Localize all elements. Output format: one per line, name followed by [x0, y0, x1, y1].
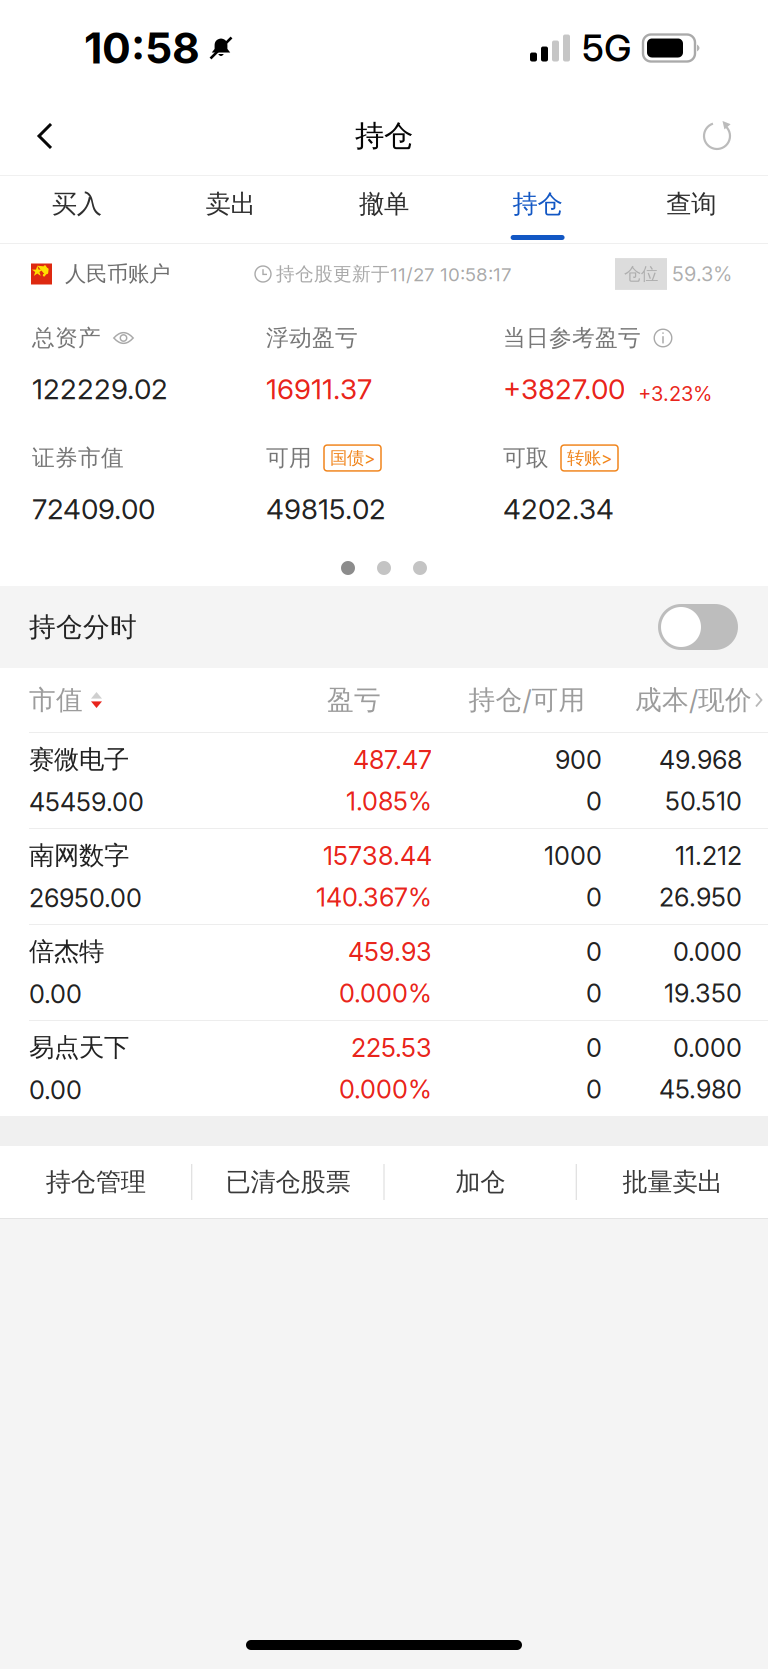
button[interactable]: 买入: [0, 176, 154, 244]
staticText: 72409.00: [32, 492, 155, 526]
button[interactable]: 易点天下: [0, 1020, 768, 1116]
button[interactable]: 加仓: [384, 1146, 576, 1218]
staticText: 已清仓股票: [225, 1166, 350, 1198]
staticText: 0.000: [673, 1032, 742, 1063]
staticText: 持仓/可用: [468, 683, 585, 717]
staticText: 45.980: [659, 1074, 742, 1105]
staticText: 59.3%: [672, 262, 732, 286]
staticText: 持仓: [355, 117, 413, 154]
staticText: 10:58: [84, 22, 200, 74]
staticText: 浮动盈亏: [266, 324, 358, 352]
staticText: +3.23%: [638, 382, 712, 406]
staticText: 持仓分时: [29, 610, 137, 644]
staticText: 赛微电子: [29, 744, 129, 776]
button[interactable]: 倍杰特: [0, 924, 768, 1020]
staticText: 0: [586, 936, 602, 967]
staticText: 0: [586, 1074, 602, 1105]
staticText: 当日参考盈亏: [503, 324, 641, 352]
staticText: 国债>: [330, 447, 375, 469]
staticText: 19.350: [664, 978, 742, 1009]
staticText: 倍杰特: [29, 936, 104, 968]
staticText: 0: [586, 1032, 602, 1063]
staticText: 49815.02: [266, 492, 386, 526]
staticText: 0.00: [29, 979, 82, 1009]
button[interactable]: 返回: [0, 96, 104, 176]
staticText: 49.968: [659, 744, 742, 775]
staticText: 持仓管理: [46, 1166, 146, 1198]
staticText: 加仓: [455, 1166, 505, 1198]
staticText: 可取: [503, 444, 549, 472]
staticText: 1.085%: [346, 786, 432, 817]
staticText: 225.53: [351, 1032, 432, 1063]
button[interactable]: 刷新: [664, 96, 768, 176]
staticText: 人民币账户: [65, 261, 170, 287]
staticText: 5G: [582, 25, 631, 71]
staticText: 15738.44: [323, 840, 432, 871]
staticText: 查询: [666, 188, 716, 220]
staticText: 卖出: [205, 188, 255, 220]
staticText: 122229.02: [32, 372, 168, 406]
staticText: 盈亏: [327, 683, 381, 717]
staticText: 持仓: [513, 188, 563, 220]
staticText: 900: [555, 744, 602, 775]
staticText: 0: [586, 882, 602, 913]
button[interactable]: 查询: [614, 176, 768, 244]
staticText: 仓位: [624, 263, 658, 285]
staticText: 0.000%: [339, 978, 432, 1009]
staticText: 证券市值: [32, 444, 124, 472]
staticText: 26.950: [659, 882, 742, 913]
staticText: 140.367%: [316, 882, 432, 913]
staticText: 0: [586, 978, 602, 1009]
button[interactable]: 持仓管理: [0, 1146, 191, 1218]
staticText: 买入: [52, 188, 102, 220]
staticText: 45459.00: [29, 787, 144, 817]
staticText: 1000: [544, 840, 602, 871]
staticText: +3827.00: [503, 372, 625, 406]
staticText: 4202.34: [503, 492, 614, 526]
staticText: 11.212: [675, 840, 742, 871]
staticText: 50.510: [665, 786, 742, 817]
staticText: 市值: [29, 683, 83, 717]
button[interactable]: 持仓: [461, 176, 614, 244]
staticText: 批量卖出: [622, 1166, 722, 1198]
staticText: 南网数字: [29, 840, 129, 872]
button[interactable]: 批量卖出: [577, 1146, 768, 1218]
button[interactable]: 已清仓股票: [192, 1146, 383, 1218]
button[interactable]: 赛微电子: [0, 732, 768, 828]
staticText: 0: [586, 786, 602, 817]
staticText: 成本/现价: [635, 683, 752, 717]
staticText: 0.000%: [339, 1074, 432, 1105]
staticText: 459.93: [348, 936, 432, 967]
button[interactable]: 持仓分时开关: [658, 604, 738, 650]
staticText: 16911.37: [266, 372, 372, 406]
staticText: 撤单: [359, 188, 409, 220]
button[interactable]: 南网数字: [0, 828, 768, 924]
staticText: 总资产: [32, 324, 101, 352]
staticText: 易点天下: [29, 1032, 129, 1064]
staticText: 0.000: [673, 936, 742, 967]
staticText: 可用: [266, 444, 312, 472]
staticText: 487.47: [353, 744, 432, 775]
staticText: 转账>: [567, 447, 612, 469]
staticText: 持仓股更新于11/27 10:58:17: [276, 262, 512, 286]
staticText: 0.00: [29, 1075, 82, 1105]
staticText: 26950.00: [29, 883, 142, 913]
button[interactable]: 撤单: [307, 176, 461, 244]
button[interactable]: 卖出: [154, 176, 307, 244]
